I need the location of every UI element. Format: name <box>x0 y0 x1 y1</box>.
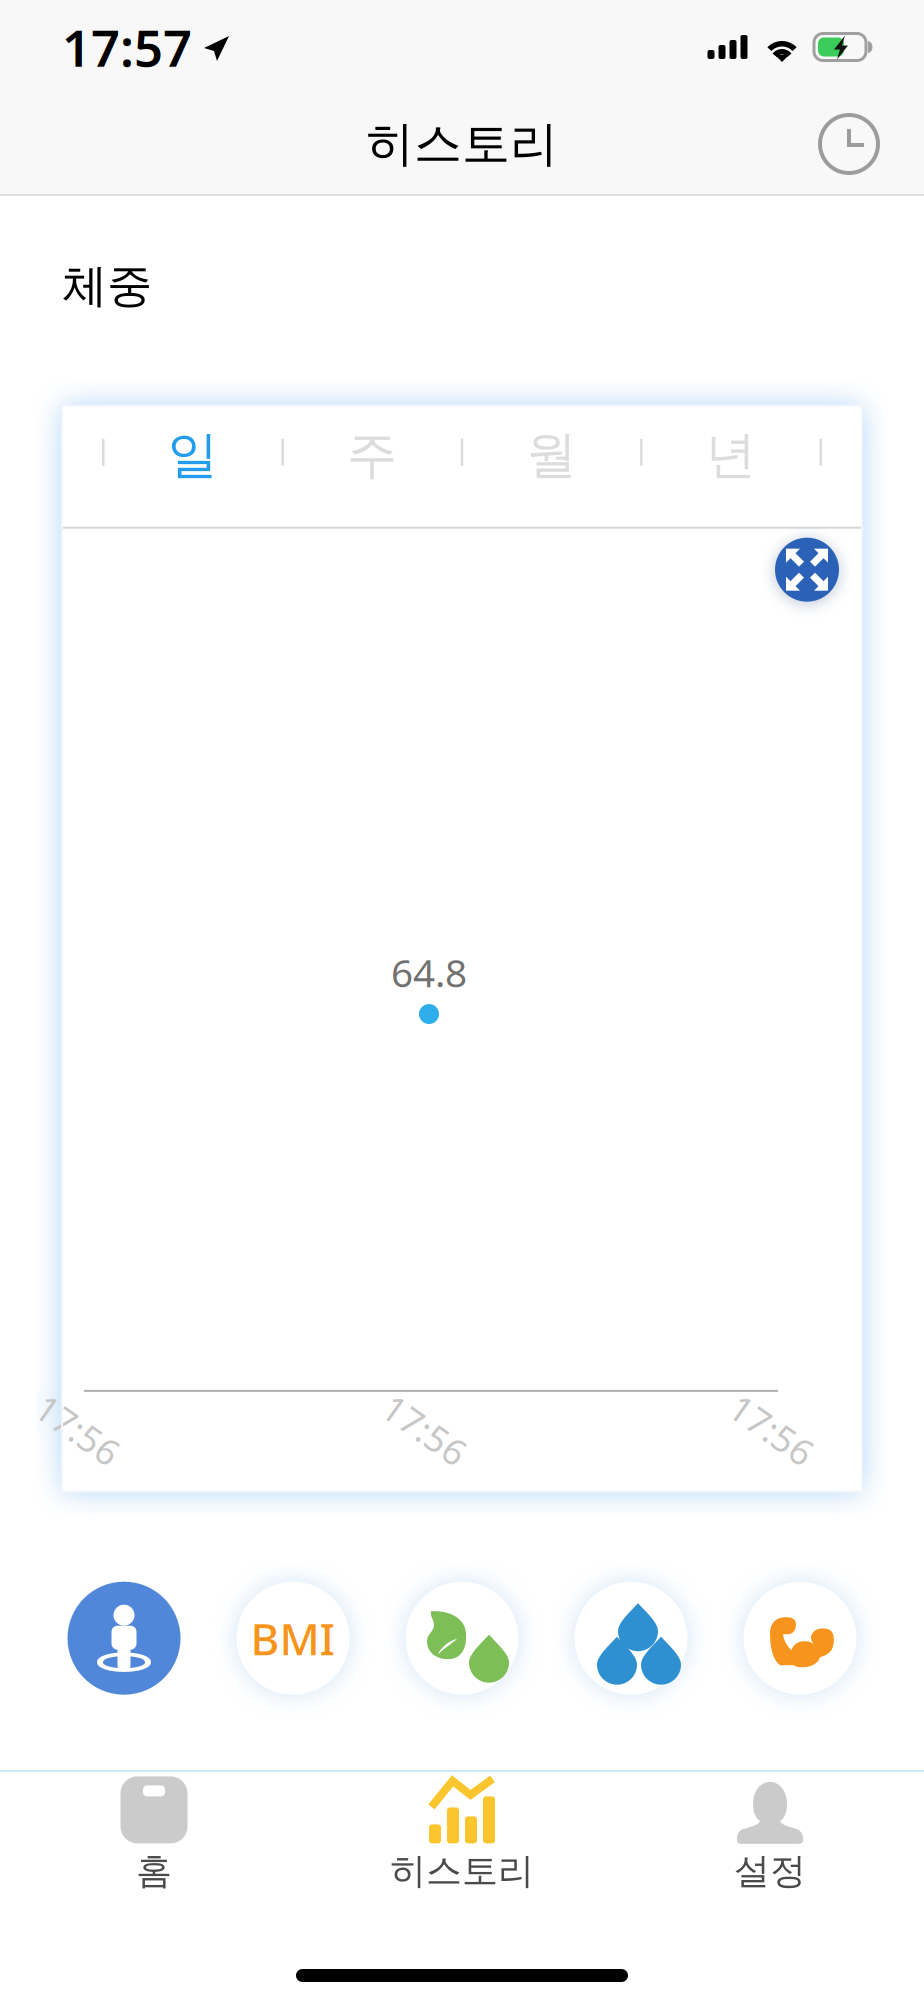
staticText: 64.8 <box>391 947 467 998</box>
button[interactable]: 설정 <box>616 1772 924 1896</box>
button[interactable]: Muscle <box>743 1582 856 1695</box>
staticText: 17:56 <box>725 1406 819 1454</box>
staticText: 체중 <box>62 258 152 314</box>
button[interactable]: 월 <box>463 406 640 527</box>
staticText: 주 <box>347 424 398 486</box>
staticText: 설정 <box>734 1849 806 1893</box>
staticText: 17:56 <box>31 1406 125 1454</box>
button[interactable]: Body water <box>574 1582 687 1695</box>
staticText: 히스토리 <box>366 114 558 173</box>
button[interactable]: Expand chart <box>775 538 839 602</box>
staticText: 일 <box>167 424 218 486</box>
staticText: 17:57 <box>62 13 192 81</box>
button[interactable]: Recent history <box>814 109 884 179</box>
button[interactable]: Weight <box>67 1582 180 1695</box>
button[interactable]: 주 <box>284 406 461 527</box>
button[interactable]: 홈 <box>0 1772 308 1896</box>
button[interactable]: 년 <box>643 406 819 527</box>
button[interactable]: Body fat <box>405 1582 518 1695</box>
staticText: 17:56 <box>378 1406 472 1454</box>
staticText: 월 <box>526 424 577 486</box>
button[interactable]: BMI <box>236 1582 349 1695</box>
button[interactable]: 히스토리 <box>308 1772 616 1896</box>
staticText: 년 <box>706 424 757 486</box>
staticText: 히스토리 <box>390 1849 534 1893</box>
staticText: 홈 <box>136 1849 172 1893</box>
staticText: BMI <box>250 1609 335 1667</box>
button[interactable]: 일 <box>104 406 281 527</box>
